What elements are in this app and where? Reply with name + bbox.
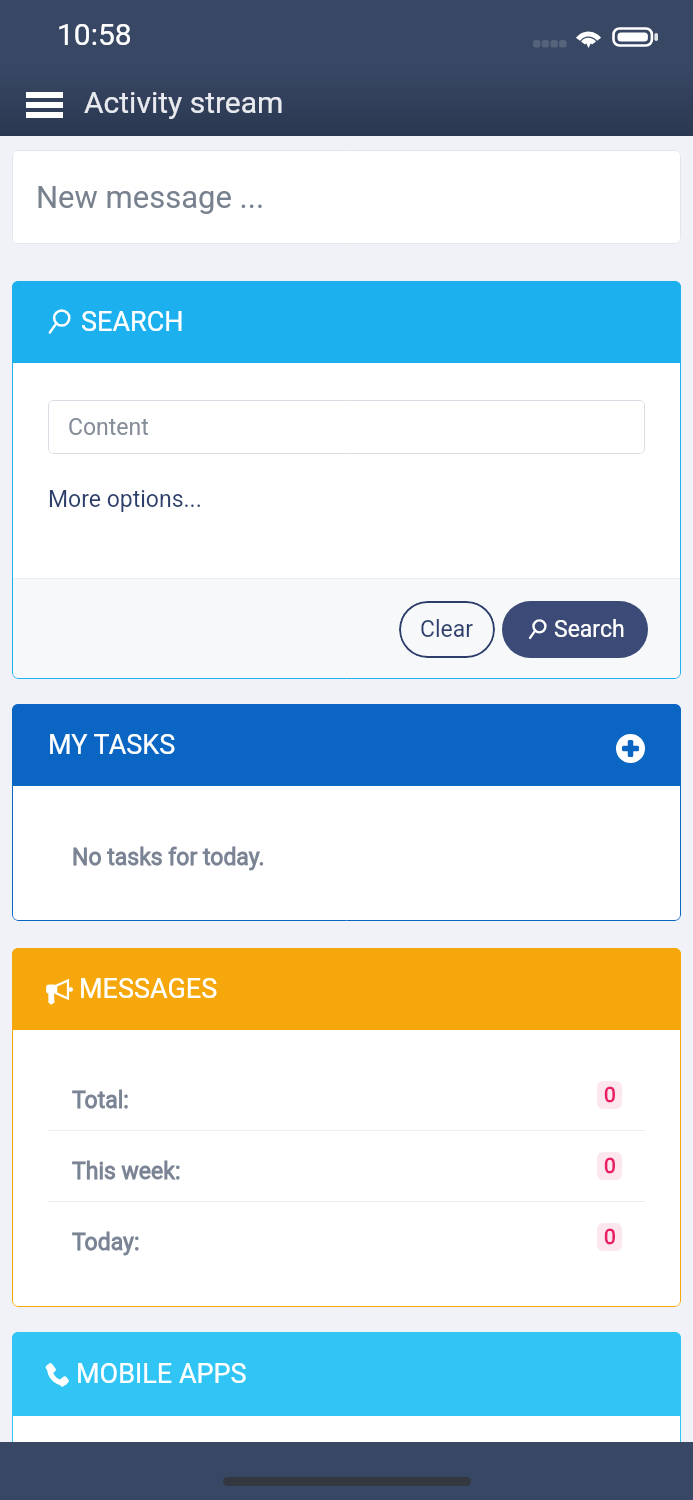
- button[interactable]: More options...: [48, 486, 202, 513]
- staticText: 0: [604, 1225, 616, 1250]
- staticText: This week:: [72, 1158, 181, 1185]
- staticText: New message ...: [36, 179, 265, 215]
- staticText: MY TASKS: [48, 729, 176, 761]
- button[interactable]: Total:: [12, 1060, 681, 1130]
- staticText: 10:58: [57, 17, 132, 52]
- staticText: Content: [68, 414, 149, 441]
- button[interactable]: Add task: [613, 731, 647, 765]
- staticText: MOBILE APPS: [76, 1358, 247, 1390]
- staticText: Activity stream: [84, 85, 284, 120]
- button[interactable]: Menu: [16, 77, 72, 133]
- button[interactable]: Today:: [12, 1202, 681, 1272]
- button[interactable]: Content: [48, 400, 645, 454]
- staticText: Search: [554, 616, 625, 643]
- staticText: No tasks for today.: [72, 844, 265, 871]
- button[interactable]: New message ...: [12, 150, 681, 244]
- staticText: 0: [604, 1154, 616, 1179]
- staticText: SEARCH: [81, 306, 184, 338]
- staticText: MESSAGES: [79, 973, 218, 1005]
- staticText: Clear: [420, 616, 474, 643]
- staticText: Total:: [72, 1087, 129, 1114]
- button[interactable]: Search: [502, 601, 648, 658]
- staticText: Today:: [72, 1229, 140, 1256]
- button[interactable]: Clear: [399, 601, 495, 658]
- button[interactable]: This week:: [12, 1131, 681, 1201]
- staticText: 0: [604, 1083, 616, 1108]
